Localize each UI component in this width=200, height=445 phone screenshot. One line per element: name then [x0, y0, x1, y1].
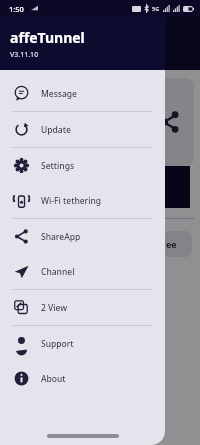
staticText: ee [166, 238, 177, 250]
staticText: affeTunnel [10, 28, 85, 47]
staticText: 2 View [41, 302, 68, 314]
staticText: Update [41, 124, 71, 136]
staticText: Wi-Fi tethering [41, 195, 102, 207]
staticText: 5G [152, 5, 160, 12]
button[interactable]: About [0, 361, 165, 396]
staticText: Settings [41, 160, 75, 172]
staticText: Support [41, 338, 74, 350]
button[interactable]: Update [0, 112, 165, 147]
button[interactable]: Message [0, 76, 165, 111]
staticText: V3.11.10 [10, 50, 39, 60]
button[interactable]: ShareApp [0, 219, 165, 254]
staticText: 1:50 [9, 4, 24, 14]
staticText: Channel [41, 266, 75, 278]
staticText: About [41, 373, 66, 385]
button[interactable]: Support [0, 326, 165, 361]
button[interactable]: Settings [0, 148, 165, 183]
staticText: ShareApp [41, 231, 81, 243]
button[interactable]: 2 View [0, 290, 165, 325]
button[interactable]: Channel [0, 254, 165, 289]
staticText: Message [41, 88, 77, 100]
button[interactable]: Wi-Fi tethering [0, 183, 165, 218]
